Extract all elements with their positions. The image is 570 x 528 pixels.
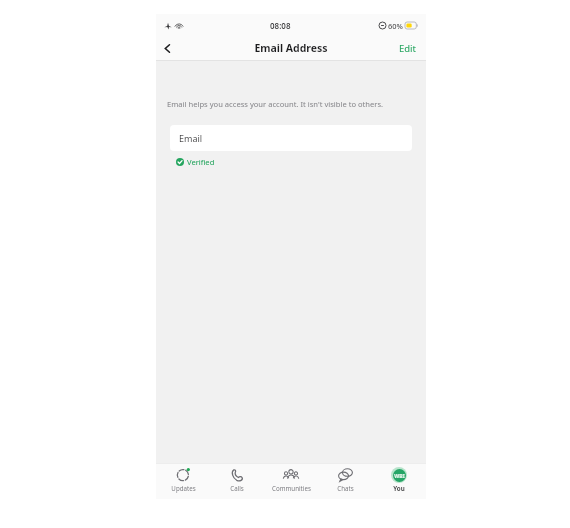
button[interactable]: Chats — [318, 466, 372, 499]
button[interactable]: Back — [156, 37, 178, 59]
button[interactable]: Email — [170, 125, 412, 151]
button[interactable]: Calls — [210, 466, 264, 499]
button[interactable]: WBI — [372, 466, 426, 499]
staticText: Verified — [187, 157, 215, 167]
staticText: Edit — [399, 42, 417, 55]
staticText: 60% — [388, 21, 403, 31]
staticText: Email Address — [254, 41, 328, 55]
staticText: Email helps you access your account. It … — [167, 99, 384, 109]
staticText: WBI — [394, 472, 405, 479]
staticText: 08:08 — [270, 20, 291, 31]
staticText: Email — [179, 132, 203, 144]
staticText: Communities — [272, 484, 311, 492]
staticText: You — [393, 484, 405, 492]
staticText: Updates — [171, 484, 196, 492]
staticText: Chats — [337, 484, 354, 492]
button[interactable]: Edit — [399, 42, 417, 55]
button[interactable]: Communities — [264, 466, 318, 499]
staticText: Calls — [230, 484, 244, 492]
button[interactable]: Updates — [156, 466, 210, 499]
